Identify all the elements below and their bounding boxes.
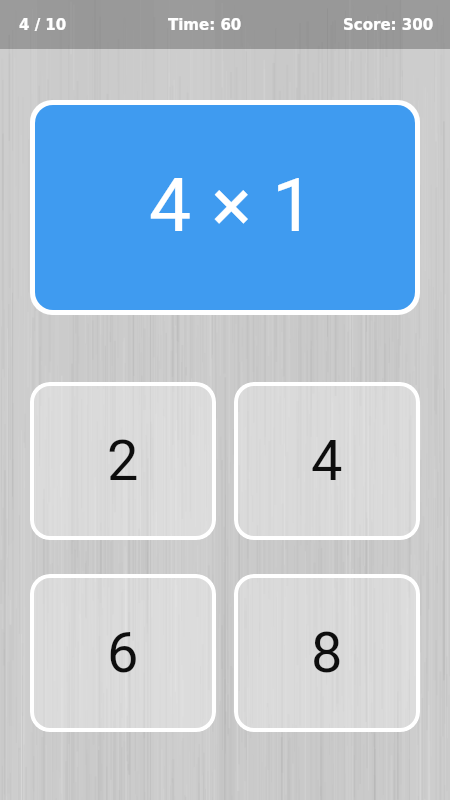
staticText: 4 / 10: [19, 16, 67, 33]
staticText: Time: 60: [168, 16, 242, 33]
button[interactable]: 4 × 1: [35, 105, 415, 310]
button[interactable]: 8: [234, 574, 420, 732]
staticText: 4: [311, 428, 343, 494]
button[interactable]: 2: [30, 382, 216, 540]
staticText: 8: [311, 620, 343, 686]
button[interactable]: 6: [30, 574, 216, 732]
staticText: 2: [107, 428, 139, 494]
staticText: 6: [107, 620, 139, 686]
staticText: Score: 300: [343, 16, 434, 33]
button[interactable]: 4: [234, 382, 420, 540]
staticText: 4 × 1: [149, 161, 316, 249]
